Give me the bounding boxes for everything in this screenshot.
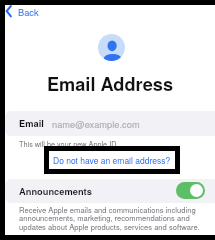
button[interactable]: Do not have an email address? bbox=[53, 154, 171, 166]
staticText: Announcements bbox=[19, 185, 92, 198]
staticText: Back bbox=[18, 5, 39, 18]
button[interactable]: Email bbox=[5, 111, 215, 136]
staticText: Receive Apple emails and communications … bbox=[19, 204, 196, 215]
staticText: This will be your new Apple ID bbox=[19, 139, 117, 149]
staticText: Email Address bbox=[5, 71, 215, 97]
staticText: updates about Apple products, services a… bbox=[19, 221, 200, 232]
button[interactable]: Announcements toggle bbox=[176, 182, 205, 199]
staticText: Email bbox=[19, 117, 44, 130]
staticText: name@example.com bbox=[52, 117, 140, 130]
staticText: announcements, marketing, recommendation… bbox=[19, 212, 190, 223]
button[interactable]: Back bbox=[5, 4, 39, 18]
